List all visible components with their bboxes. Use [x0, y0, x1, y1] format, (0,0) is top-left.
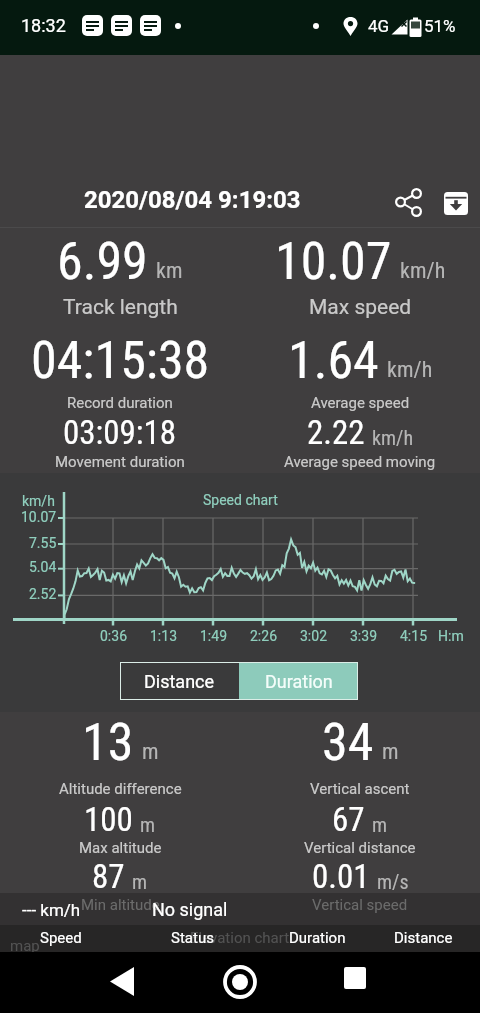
- staticText: Vertical distance: [304, 839, 416, 857]
- button[interactable]: [223, 965, 257, 999]
- staticText: 34: [322, 712, 374, 773]
- staticText: Altitude difference: [59, 780, 182, 798]
- staticText: Track length: [63, 295, 178, 320]
- staticText: --- km/h: [22, 900, 81, 920]
- staticText: m: [372, 813, 388, 836]
- staticText: 1:13: [150, 628, 177, 644]
- staticText: Duration: [265, 671, 333, 692]
- staticText: 0.01: [312, 857, 370, 896]
- button[interactable]: [344, 967, 366, 989]
- staticText: km/h: [372, 426, 414, 449]
- staticText: 3:02: [300, 628, 327, 644]
- staticText: H:m: [438, 628, 464, 644]
- staticText: Duration: [289, 929, 346, 947]
- staticText: 6.99: [57, 231, 148, 292]
- staticText: 51%: [424, 16, 456, 36]
- staticText: m: [382, 739, 399, 765]
- staticText: Max altitude: [79, 839, 162, 857]
- staticText: No signal: [152, 899, 228, 920]
- staticText: 03:09:18: [63, 413, 177, 452]
- staticText: 1:49: [200, 628, 227, 644]
- staticText: Speed chart: [203, 492, 278, 508]
- staticText: 13: [82, 712, 134, 773]
- staticText: 2.22: [307, 413, 365, 452]
- button[interactable]: Speed: [11, 929, 111, 947]
- staticText: Distance: [394, 929, 453, 947]
- staticText: 2.52: [29, 586, 57, 602]
- staticText: 2020/08/04 9:19:03: [84, 186, 301, 214]
- staticText: 3:39: [350, 628, 377, 644]
- staticText: Speed: [40, 929, 82, 947]
- staticText: km/h: [22, 493, 55, 509]
- staticText: 18:32: [21, 15, 66, 36]
- staticText: 5.04: [29, 559, 57, 575]
- staticText: 4:15: [400, 628, 427, 644]
- staticText: Movement duration: [55, 453, 185, 471]
- staticText: Vertical ascent: [310, 780, 410, 798]
- staticText: 67: [332, 800, 365, 839]
- staticText: Max speed: [309, 295, 412, 320]
- staticText: 10.07: [275, 231, 392, 292]
- staticText: 100: [84, 800, 133, 839]
- staticText: Average speed moving: [284, 453, 436, 471]
- staticText: Min altitude: [81, 896, 160, 914]
- staticText: Average speed: [311, 394, 410, 412]
- staticText: 4G: [368, 16, 390, 36]
- button[interactable]: Duration: [239, 662, 358, 700]
- staticText: Distance: [144, 671, 215, 692]
- staticText: m: [140, 813, 156, 836]
- button[interactable]: Distance: [373, 929, 473, 947]
- staticText: km/h: [400, 258, 446, 284]
- staticText: 2:26: [250, 628, 277, 644]
- staticText: m: [132, 870, 148, 893]
- button[interactable]: [444, 192, 468, 215]
- staticText: 87: [92, 857, 125, 896]
- staticText: Status: [171, 929, 214, 947]
- staticText: Record duration: [67, 394, 173, 412]
- button[interactable]: Duration: [267, 929, 367, 947]
- staticText: km/h: [387, 357, 433, 383]
- staticText: 1.64: [288, 330, 379, 391]
- button[interactable]: Status: [142, 929, 242, 947]
- staticText: 04:15:38: [31, 330, 210, 391]
- button[interactable]: [396, 189, 422, 215]
- staticText: m/s: [377, 870, 409, 893]
- button[interactable]: [110, 967, 134, 996]
- staticText: m: [142, 739, 159, 765]
- staticText: km: [156, 258, 183, 284]
- staticText: 7.55: [29, 535, 57, 551]
- staticText: Vertical speed: [312, 896, 408, 914]
- staticText: map: [10, 937, 40, 955]
- staticText: Elevation chart: [190, 929, 290, 947]
- button[interactable]: Distance: [120, 662, 239, 700]
- staticText: 0:36: [100, 628, 127, 644]
- staticText: 10.07: [21, 509, 57, 525]
